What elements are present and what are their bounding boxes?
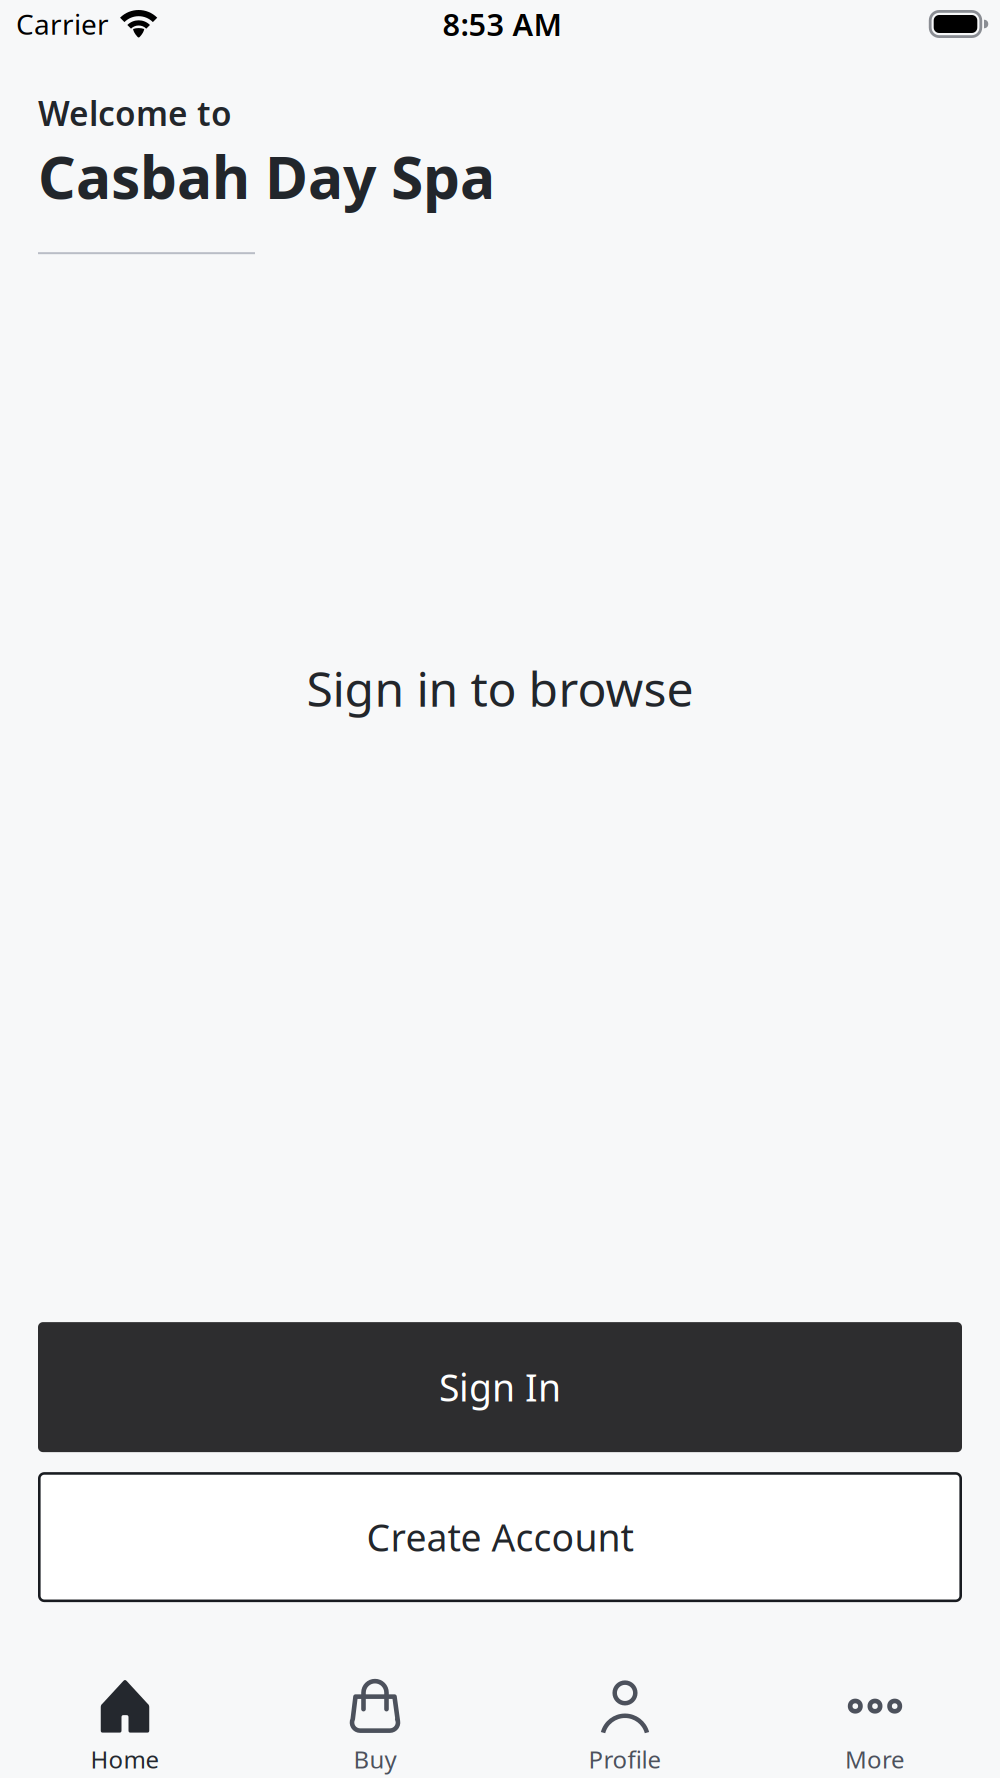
staticText: 8:53 AM [442,4,561,44]
staticText: Buy [353,1743,396,1775]
staticText: Casbah Day Spa [38,137,495,215]
staticText: Home [90,1743,159,1775]
button[interactable]: Buy [250,1679,500,1775]
staticText: Sign In [439,1362,561,1412]
button[interactable]: Create Account [38,1472,962,1602]
button[interactable]: Home [0,1679,250,1775]
staticText: Carrier [16,5,109,43]
staticText: Sign in to browse [306,656,693,720]
button[interactable]: Profile [500,1679,750,1775]
button[interactable]: More [750,1679,1000,1775]
staticText: Welcome to [38,91,232,135]
staticText: Create Account [366,1512,633,1562]
staticText: More [845,1743,905,1775]
button[interactable]: Sign In [38,1322,962,1452]
staticText: Profile [588,1743,661,1775]
